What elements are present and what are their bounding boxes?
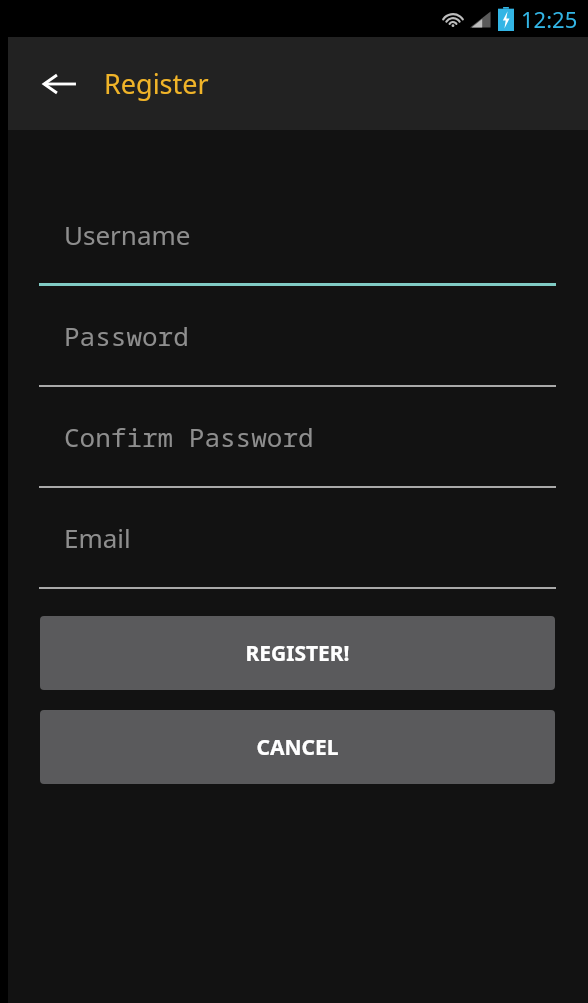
button[interactable]: Back [30, 54, 90, 114]
button[interactable]: Username [8, 185, 588, 286]
staticText: 12:25 [521, 4, 578, 34]
button[interactable]: CANCEL [40, 710, 555, 784]
staticText: Password [64, 318, 189, 353]
staticText: Confirm Password [64, 419, 314, 454]
staticText: Register [104, 65, 209, 102]
staticText: Username [64, 217, 191, 252]
button[interactable]: Password [8, 286, 588, 387]
button[interactable]: Email [8, 488, 588, 589]
button[interactable]: Confirm Password [8, 387, 588, 488]
staticText: CANCEL [256, 733, 339, 762]
staticText: REGISTER! [245, 639, 350, 668]
staticText: Email [64, 520, 131, 555]
button[interactable]: REGISTER! [40, 616, 555, 690]
